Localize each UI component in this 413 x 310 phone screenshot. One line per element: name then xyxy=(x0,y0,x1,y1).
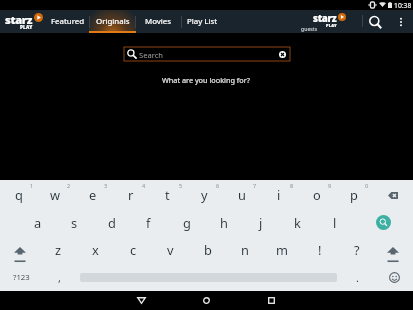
staticText: What are you looking for? xyxy=(162,75,250,85)
button[interactable]: o xyxy=(298,180,335,208)
button[interactable]: Shift xyxy=(1,239,39,269)
staticText: h xyxy=(220,214,228,231)
button[interactable]: k xyxy=(279,208,316,236)
staticText: Originals xyxy=(96,16,130,27)
button[interactable]: i xyxy=(260,180,297,208)
button[interactable]: ?123 xyxy=(2,263,40,291)
staticText: g xyxy=(183,214,191,231)
button[interactable]: g xyxy=(168,208,205,236)
staticText: x xyxy=(92,241,99,258)
staticText: Search xyxy=(139,50,164,60)
staticText: . xyxy=(356,270,359,285)
button[interactable]: x xyxy=(77,235,114,263)
staticText: b xyxy=(204,241,212,258)
button[interactable]: z xyxy=(40,235,77,263)
button[interactable]: t xyxy=(149,180,186,208)
staticText: 5 xyxy=(179,182,183,189)
staticText: 10:38 xyxy=(394,1,412,10)
staticText: 4 xyxy=(142,182,146,189)
button[interactable]: Movies xyxy=(136,10,181,33)
button[interactable]: ! xyxy=(301,235,338,263)
button[interactable]: ? xyxy=(338,235,375,263)
staticText: PLAY xyxy=(326,23,337,28)
staticText: i xyxy=(277,186,281,203)
staticText: k xyxy=(294,214,301,231)
staticText: 0 xyxy=(365,182,369,189)
staticText: ! xyxy=(318,241,322,258)
staticText: s xyxy=(71,214,78,231)
button[interactable]: q xyxy=(0,180,37,208)
staticText: l xyxy=(333,214,337,231)
staticText: 6 xyxy=(216,182,220,189)
staticText: starz xyxy=(313,12,337,25)
button[interactable]: m xyxy=(263,235,300,263)
button[interactable]: l xyxy=(316,208,353,236)
button[interactable]: Clear xyxy=(277,49,287,59)
button[interactable]: d xyxy=(93,208,130,236)
staticText: j xyxy=(259,214,263,231)
button[interactable]: n xyxy=(226,235,263,263)
staticText: guests xyxy=(301,25,318,32)
staticText: 2 xyxy=(67,182,71,189)
button[interactable]: . xyxy=(340,263,375,291)
staticText: w xyxy=(50,186,61,203)
button[interactable]: Search xyxy=(124,47,290,61)
button[interactable]: w xyxy=(37,180,74,208)
button[interactable]: Search xyxy=(364,208,402,236)
staticText: r xyxy=(128,186,134,203)
staticText: u xyxy=(238,186,246,203)
staticText: 1 xyxy=(30,182,34,189)
button[interactable]: Featured xyxy=(46,10,90,33)
button[interactable]: e xyxy=(74,180,111,208)
button[interactable]: , xyxy=(42,263,77,291)
button[interactable]: v xyxy=(152,235,189,263)
staticText: Movies xyxy=(145,16,172,27)
staticText: Featured xyxy=(51,16,85,27)
button[interactable]: Search xyxy=(364,11,386,33)
staticText: 9 xyxy=(328,182,332,189)
staticText: z xyxy=(55,241,62,258)
button[interactable]: p xyxy=(335,180,372,208)
button[interactable]: r xyxy=(112,180,149,208)
button[interactable]: s xyxy=(56,208,93,236)
button[interactable]: f xyxy=(130,208,167,236)
staticText: v xyxy=(167,241,174,258)
button[interactable]: Recent apps xyxy=(261,291,281,310)
button[interactable]: Play List xyxy=(181,10,224,33)
staticText: ? xyxy=(354,241,360,258)
staticText: y xyxy=(201,186,208,203)
button[interactable]: h xyxy=(205,208,242,236)
button[interactable]: Home xyxy=(196,291,216,310)
staticText: 3 xyxy=(104,182,108,189)
staticText: t xyxy=(165,186,170,203)
staticText: q xyxy=(15,186,23,203)
staticText: PLAY xyxy=(20,24,33,30)
staticText: 8 xyxy=(290,182,294,189)
button[interactable]: b xyxy=(189,235,226,263)
staticText: f xyxy=(146,214,151,231)
button[interactable]: Shift xyxy=(374,239,412,269)
button[interactable]: j xyxy=(242,208,279,236)
button[interactable]: u xyxy=(223,180,260,208)
button[interactable]: y xyxy=(186,180,223,208)
button[interactable]: Back xyxy=(131,291,151,310)
staticText: d xyxy=(108,214,116,231)
staticText: p xyxy=(350,186,358,203)
staticText: Play List xyxy=(187,16,218,27)
staticText: 7 xyxy=(253,182,257,189)
staticText: starz xyxy=(5,12,33,27)
button[interactable]: c xyxy=(115,235,152,263)
staticText: c xyxy=(130,241,137,258)
staticText: n xyxy=(241,241,249,258)
button[interactable]: Originals xyxy=(89,10,136,33)
button[interactable]: More options xyxy=(390,11,411,32)
button[interactable]: Emoji xyxy=(375,263,413,291)
staticText: ?123 xyxy=(13,272,30,283)
button[interactable]: Backspace xyxy=(374,181,412,209)
staticText: , xyxy=(58,270,61,285)
button[interactable]: a xyxy=(19,208,56,236)
staticText: a xyxy=(34,214,42,231)
staticText: m xyxy=(276,241,288,258)
staticText: o xyxy=(313,186,321,203)
